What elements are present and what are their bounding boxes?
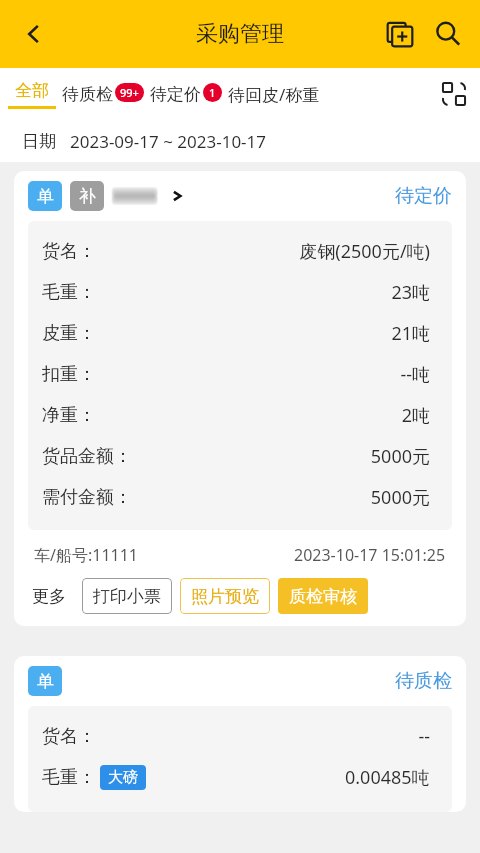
staticText: 货名： (42, 725, 96, 748)
staticText: 0.00485吨 (345, 765, 430, 790)
button[interactable]: 待定价 (150, 68, 222, 120)
staticText: 照片预览 (191, 586, 259, 607)
staticText: 单 (37, 671, 54, 692)
staticText: 补 (79, 186, 96, 207)
staticText: 23吨 (391, 280, 430, 305)
staticText: 待回皮/称重 (228, 83, 320, 106)
staticText: 1 (209, 85, 216, 100)
staticText: 单 (37, 186, 54, 207)
staticText: 货品金额： (42, 445, 132, 468)
staticText: 更多 (32, 586, 66, 607)
staticText: 废钢(2500元/吨) (299, 239, 430, 264)
staticText: 待定价 (395, 184, 452, 208)
staticText: 5000元 (370, 444, 430, 469)
staticText: 待质检 (62, 84, 113, 105)
button[interactable]: 待回皮/称重 (228, 68, 320, 120)
button[interactable]: 全部 (8, 68, 56, 120)
staticText: 打印小票 (93, 586, 161, 607)
button[interactable]: 单 (14, 656, 466, 812)
staticText: 需付金额： (42, 486, 132, 509)
staticText: 日期 (22, 131, 56, 152)
staticText: --吨 (400, 362, 430, 387)
button[interactable]: 照片预览 (180, 578, 270, 614)
staticText: 5000元 (370, 485, 430, 510)
staticText: 车/船号:11111 (34, 544, 139, 566)
staticText: 采购管理 (196, 20, 284, 48)
staticText: 2023-09-17 ~ 2023-10-17 (70, 130, 267, 153)
staticText: -- (418, 724, 430, 749)
staticText: 净重： (42, 404, 96, 427)
staticText: 21吨 (391, 321, 430, 346)
button[interactable]: 质检审核 (278, 578, 368, 614)
staticText: 2吨 (401, 403, 430, 428)
button[interactable]: New order (376, 10, 424, 58)
staticText: 99+ (120, 85, 139, 100)
staticText: 2023-10-17 15:01:25 (294, 544, 446, 566)
button[interactable]: 更多 (30, 586, 68, 607)
button[interactable]: Back (10, 10, 58, 58)
staticText: 待质检 (395, 669, 452, 693)
staticText: 货名： (42, 240, 96, 263)
button[interactable]: Search (424, 10, 472, 58)
staticText: 待定价 (150, 84, 201, 105)
button[interactable]: 打印小票 (82, 578, 172, 614)
staticText: 毛重： (42, 281, 96, 304)
button[interactable]: 单 (14, 171, 466, 626)
staticText: 大磅 (108, 768, 138, 787)
button[interactable]: 待质检 (62, 68, 144, 120)
staticText: 质检审核 (289, 586, 357, 607)
staticText: 扣重： (42, 363, 96, 386)
button[interactable]: 日期 (0, 120, 480, 162)
staticText: 皮重： (42, 322, 96, 345)
staticText: 毛重： (42, 766, 96, 789)
staticText: 全部 (15, 80, 49, 101)
button[interactable]: Switch view (432, 72, 476, 116)
